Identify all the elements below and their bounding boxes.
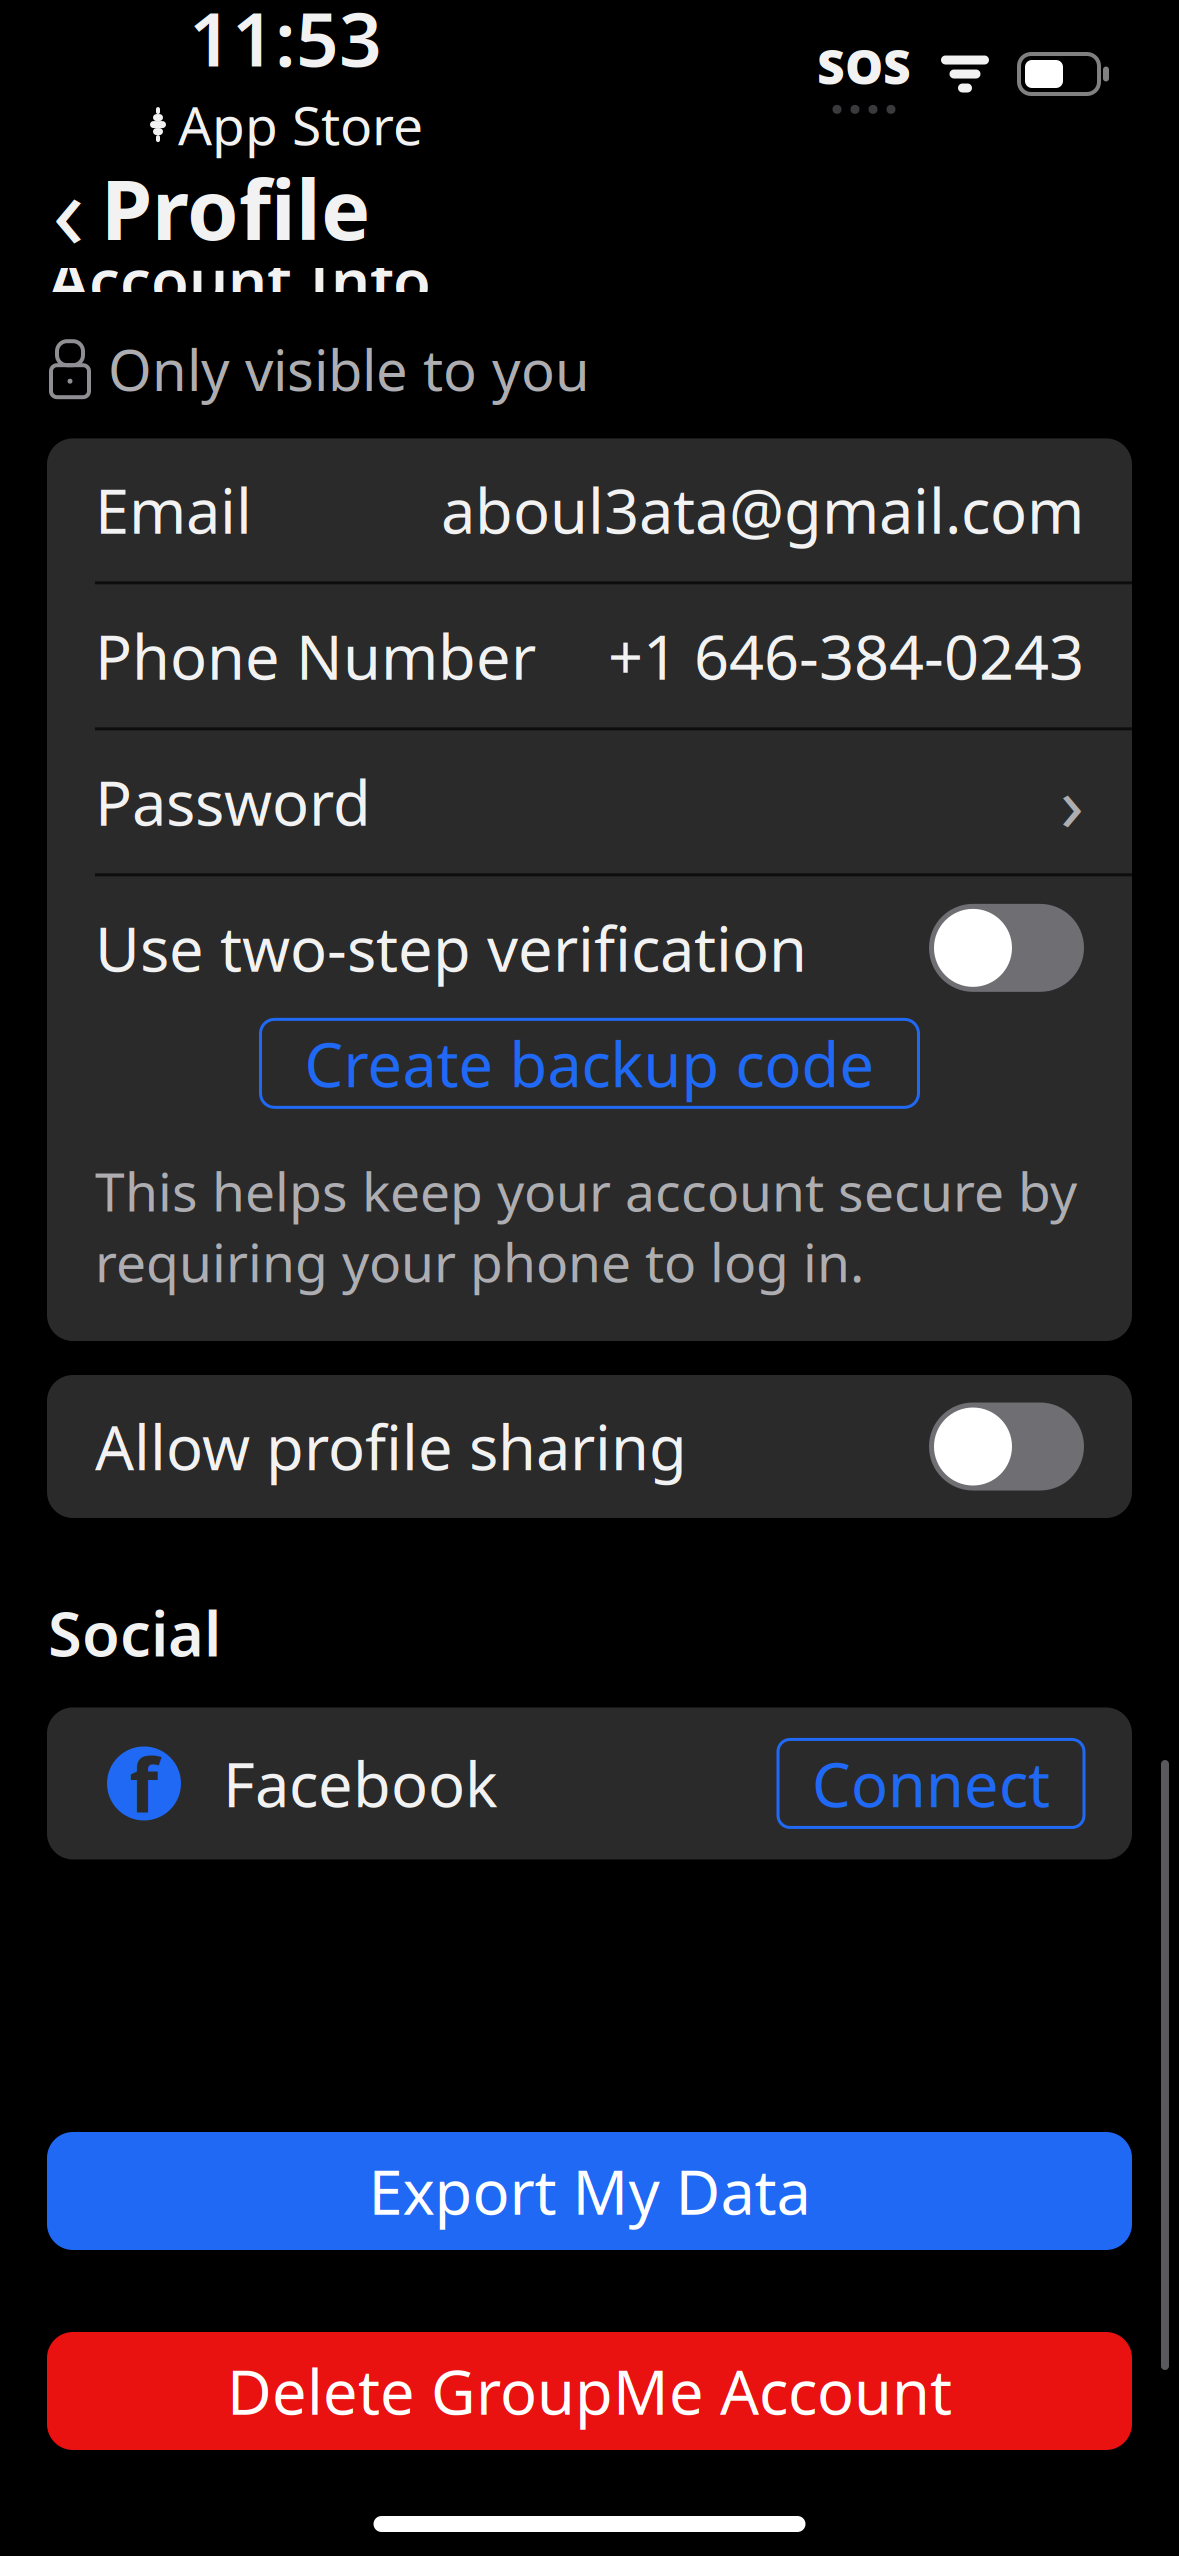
staticText: This helps keep your account secure by r… bbox=[95, 1155, 1077, 1297]
staticText: Password bbox=[95, 761, 371, 842]
button[interactable]: Delete GroupMe Account bbox=[47, 2332, 1132, 2450]
staticText: f bbox=[129, 1734, 158, 1833]
button[interactable]: Back to Profile bbox=[0, 127, 400, 289]
staticText: Export My Data bbox=[368, 2150, 810, 2232]
staticText: Phone Number bbox=[95, 615, 536, 696]
staticText: Only visible to you bbox=[108, 332, 590, 406]
staticText: Profile bbox=[101, 153, 370, 263]
button[interactable]: Allow profile sharing bbox=[47, 1375, 1132, 1518]
button[interactable]: Phone Number bbox=[47, 584, 1132, 727]
button[interactable]: Export My Data bbox=[47, 2132, 1132, 2250]
button[interactable]: Create backup code bbox=[260, 1019, 918, 1107]
staticText: Account Info bbox=[48, 239, 431, 321]
staticText: Facebook bbox=[223, 1743, 498, 1824]
button[interactable]: Password bbox=[47, 730, 1132, 873]
staticText: Email bbox=[95, 469, 252, 550]
staticText: ‹ bbox=[52, 137, 85, 279]
staticText: Allow profile sharing bbox=[95, 1406, 687, 1487]
button[interactable]: Email bbox=[47, 438, 1132, 581]
staticText: Use two-step verification bbox=[95, 907, 807, 988]
staticText: App Store bbox=[178, 89, 423, 160]
button[interactable]: Connect bbox=[778, 1739, 1084, 1827]
staticText: SOS bbox=[817, 34, 911, 98]
staticText: Delete GroupMe Account bbox=[227, 2350, 952, 2432]
staticText: +1 646-384-0243 bbox=[608, 615, 1084, 696]
staticText: › bbox=[1060, 750, 1084, 853]
staticText: Connect bbox=[812, 1743, 1050, 1824]
staticText: 11:53 bbox=[189, 0, 382, 87]
button[interactable]: Use two-step verification bbox=[47, 876, 1132, 1019]
staticText: aboul3ata@gmail.com bbox=[441, 469, 1084, 550]
staticText: Social bbox=[48, 1592, 221, 1673]
staticText: Create backup code bbox=[304, 1023, 874, 1104]
